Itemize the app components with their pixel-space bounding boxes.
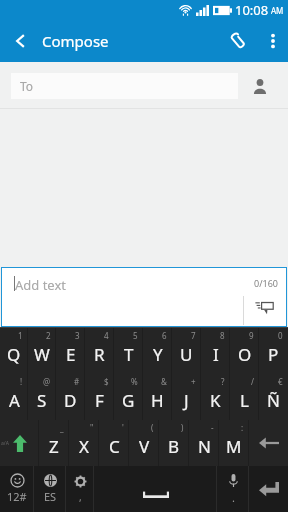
staticText: 7 <box>191 330 196 341</box>
staticText: - <box>211 422 214 433</box>
staticText: a/A <box>1 440 9 447</box>
staticText: € <box>278 376 283 387</box>
button[interactable]: Backspace <box>249 420 288 466</box>
staticText: F <box>95 389 104 412</box>
button[interactable]: Attach <box>218 20 258 62</box>
button[interactable]: Voice input <box>217 466 249 512</box>
button[interactable]: Shift <box>0 420 39 466</box>
button[interactable]: D <box>56 374 85 420</box>
staticText: W <box>34 343 50 366</box>
button[interactable]: Settings <box>66 466 94 512</box>
button[interactable]: A <box>0 374 28 420</box>
staticText: H <box>151 389 164 412</box>
staticText: ) <box>181 422 184 433</box>
staticText: @ <box>43 376 51 387</box>
staticText: 12# <box>7 489 27 504</box>
button[interactable]: Pick contact <box>238 62 282 109</box>
staticText: $ <box>104 376 109 387</box>
staticText: 9 <box>249 330 254 341</box>
button[interactable]: Send message <box>249 291 281 323</box>
staticText: 2 <box>46 330 51 341</box>
staticText: L <box>240 389 249 412</box>
staticText: : <box>241 422 244 433</box>
staticText: # <box>74 376 80 387</box>
staticText: ES <box>44 489 57 504</box>
staticText: ( <box>151 422 154 433</box>
button[interactable]: Z <box>39 420 69 466</box>
button[interactable]: K <box>201 374 230 420</box>
staticText: E <box>66 343 76 366</box>
button[interactable]: L <box>230 374 259 420</box>
staticText: 3 <box>75 330 80 341</box>
button[interactable]: To <box>11 73 238 99</box>
button[interactable]: P <box>259 328 288 374</box>
staticText: O <box>238 343 252 366</box>
button[interactable]: Ñ <box>259 374 288 420</box>
staticText: ! <box>20 376 23 387</box>
staticText: C <box>109 435 120 458</box>
button[interactable]: Y <box>143 328 172 374</box>
button[interactable]: Change language <box>34 466 66 512</box>
button[interactable]: M <box>219 420 249 466</box>
staticText: 8 <box>220 330 225 341</box>
other: Backspace <box>249 420 288 466</box>
staticText: ' <box>122 422 124 433</box>
button[interactable]: E <box>56 328 85 374</box>
button[interactable]: Enter <box>249 466 288 512</box>
staticText: M <box>226 435 242 458</box>
staticText: 0/160 <box>254 277 278 289</box>
staticText: 6 <box>162 330 167 341</box>
button[interactable]: G <box>114 374 143 420</box>
staticText: ? <box>221 376 225 387</box>
staticText: 10:08 <box>235 1 269 19</box>
button[interactable]: Back <box>0 20 42 62</box>
button[interactable]: Q <box>0 328 28 374</box>
staticText: A <box>9 389 20 412</box>
button[interactable]: U <box>172 328 201 374</box>
staticText: % <box>131 376 138 387</box>
staticText: & <box>161 376 167 387</box>
staticText: / <box>251 376 254 387</box>
staticText: Add text <box>15 276 67 294</box>
staticText: AM <box>271 5 284 16</box>
button[interactable]: X <box>69 420 99 466</box>
button[interactable]: Numbers and symbols <box>0 466 34 512</box>
staticText: S <box>37 389 47 412</box>
staticText: 4 <box>104 330 109 341</box>
staticText: + <box>191 376 196 387</box>
staticText: " <box>90 422 94 433</box>
staticText: B <box>168 435 180 458</box>
staticText: T <box>124 343 134 366</box>
button[interactable]: H <box>143 374 172 420</box>
staticText: Ñ <box>267 389 280 412</box>
button[interactable]: Add text <box>1 267 287 327</box>
staticText: K <box>210 389 221 412</box>
button[interactable]: I <box>201 328 230 374</box>
button[interactable]: O <box>230 328 259 374</box>
other: Shift <box>0 420 39 466</box>
staticText: Compose <box>42 31 109 51</box>
button[interactable]: T <box>114 328 143 374</box>
staticText: . <box>232 490 235 505</box>
staticText: P <box>268 343 279 366</box>
staticText: G <box>122 389 135 412</box>
button[interactable]: More options <box>258 20 288 62</box>
button[interactable]: S <box>28 374 56 420</box>
button[interactable]: V <box>129 420 159 466</box>
staticText: 0 <box>278 330 283 341</box>
button[interactable]: B <box>159 420 189 466</box>
button[interactable]: J <box>172 374 201 420</box>
button[interactable]: C <box>99 420 129 466</box>
staticText: U <box>180 343 193 366</box>
button[interactable]: Space <box>94 466 217 512</box>
staticText: Y <box>153 343 163 366</box>
staticText: J <box>184 389 189 412</box>
button[interactable]: N <box>189 420 219 466</box>
button[interactable]: F <box>85 374 114 420</box>
button[interactable]: R <box>85 328 114 374</box>
button[interactable]: W <box>28 328 56 374</box>
staticText: R <box>94 343 105 366</box>
staticText: 5 <box>133 330 138 341</box>
staticText: X <box>79 435 89 458</box>
staticText: , <box>79 490 82 504</box>
